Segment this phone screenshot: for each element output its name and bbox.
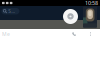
- button[interactable]: Messenger: [63, 9, 78, 24]
- staticText: Me: [2, 30, 10, 37]
- staticText: Search: [8, 8, 17, 14]
- button[interactable]: Search: [1, 8, 19, 14]
- staticText: 10:58: [85, 0, 98, 7]
- button[interactable]: More options: [90, 32, 91, 36]
- button[interactable]: Call: [72, 32, 76, 36]
